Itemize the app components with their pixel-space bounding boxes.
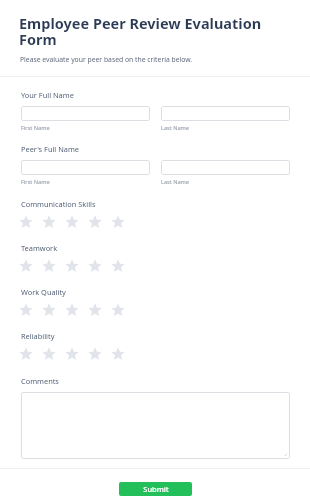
staticText: Comments bbox=[21, 376, 59, 386]
button[interactable]: Rate Work Quality star bbox=[111, 301, 134, 319]
staticText: First Name bbox=[21, 124, 50, 132]
staticText: Teamwork bbox=[21, 243, 58, 253]
button[interactable] bbox=[161, 160, 290, 175]
button[interactable]: Rate Communication Skills star bbox=[111, 213, 134, 231]
button[interactable]: Rate Teamwork star bbox=[19, 257, 42, 275]
button[interactable]: Rate Work Quality star bbox=[88, 301, 111, 319]
button[interactable]: Rate Teamwork star bbox=[65, 257, 88, 275]
staticText: Submit bbox=[143, 484, 169, 494]
button[interactable]: Submit bbox=[119, 482, 192, 496]
button[interactable]: Rate Communication Skills star bbox=[65, 213, 88, 231]
button[interactable] bbox=[21, 392, 290, 459]
button[interactable]: Rate Reliability star bbox=[111, 345, 134, 363]
button[interactable] bbox=[21, 160, 150, 175]
button[interactable] bbox=[21, 106, 150, 121]
button[interactable]: Rate Communication Skills star bbox=[42, 213, 65, 231]
staticText: Your Full Name bbox=[21, 90, 74, 100]
staticText: Employee Peer Review Evaluation Form bbox=[19, 13, 298, 50]
staticText: Communication Skills bbox=[21, 199, 96, 209]
button[interactable]: Rate Reliability star bbox=[19, 345, 42, 363]
button[interactable]: Rate Reliability star bbox=[65, 345, 88, 363]
button[interactable]: Rate Teamwork star bbox=[42, 257, 65, 275]
staticText: Peer's Full Name bbox=[21, 144, 80, 154]
staticText: Reliability bbox=[21, 331, 55, 341]
button[interactable]: Rate Communication Skills star bbox=[19, 213, 42, 231]
button[interactable]: Rate Work Quality star bbox=[65, 301, 88, 319]
staticText: Last Name bbox=[161, 178, 189, 186]
button[interactable]: Rate Reliability star bbox=[42, 345, 65, 363]
staticText: Last Name bbox=[161, 124, 189, 132]
staticText: First Name bbox=[21, 178, 50, 186]
button[interactable]: Rate Reliability star bbox=[88, 345, 111, 363]
staticText: Please evaluate your peer based on the c… bbox=[20, 55, 193, 64]
staticText: Work Quality bbox=[21, 287, 66, 297]
button[interactable] bbox=[161, 106, 290, 121]
button[interactable]: Rate Work Quality star bbox=[42, 301, 65, 319]
button[interactable]: Rate Teamwork star bbox=[88, 257, 111, 275]
button[interactable]: Rate Work Quality star bbox=[19, 301, 42, 319]
button[interactable]: Rate Communication Skills star bbox=[88, 213, 111, 231]
button[interactable]: Rate Teamwork star bbox=[111, 257, 134, 275]
